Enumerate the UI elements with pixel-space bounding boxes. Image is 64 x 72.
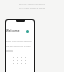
staticText: We will send you a code: [6, 45, 31, 48]
staticText: Enter your email address: [6, 40, 32, 43]
staticText: Welcome: [6, 29, 20, 33]
staticText: SET UP YOUR ACCOUNT: [19, 3, 46, 6]
staticText: IN A FEW SIMPLE STEPS: [19, 7, 46, 10]
other: Status: [26, 30, 29, 33]
